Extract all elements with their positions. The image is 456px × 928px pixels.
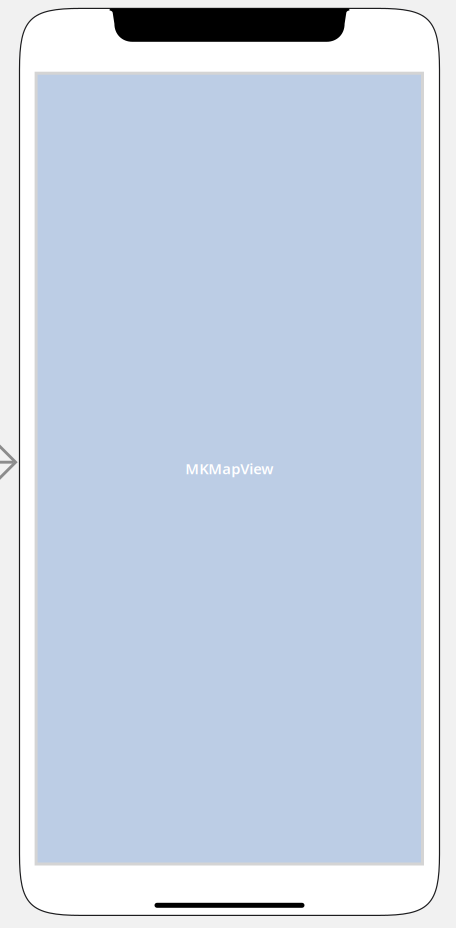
button[interactable]: MKMapView [35, 72, 424, 865]
staticText: MKMapView [185, 459, 273, 478]
